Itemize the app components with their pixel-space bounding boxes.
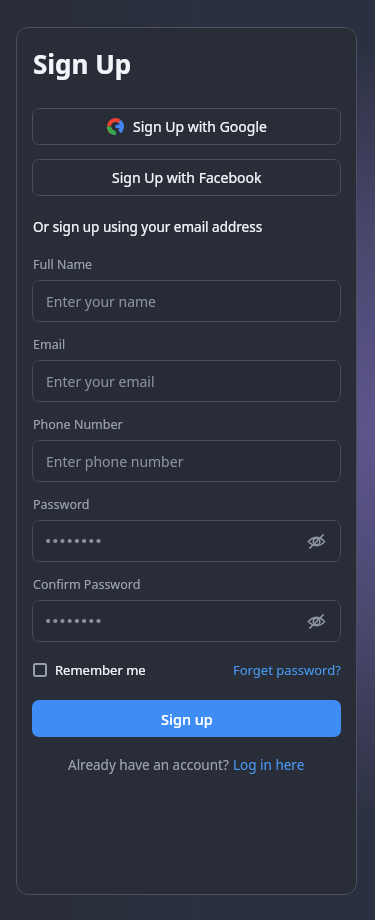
staticText: Or sign up using your email address (33, 218, 263, 236)
staticText: Sign Up with Facebook (112, 168, 262, 187)
staticText: Confirm Password (33, 576, 141, 593)
button[interactable]: Log in here (233, 756, 305, 774)
button[interactable]: Sign Up with Google (32, 108, 341, 145)
staticText: Log in here (233, 756, 305, 774)
staticText: Phone Number (33, 416, 123, 433)
button[interactable]: Remember me (32, 659, 147, 681)
staticText: Enter your email (46, 372, 155, 391)
staticText: Enter your name (46, 292, 156, 311)
button[interactable]: Show password (303, 528, 329, 554)
staticText: Forget password? (233, 661, 341, 679)
button[interactable]: Sign up (32, 700, 341, 737)
button[interactable]: Sign Up with Facebook (32, 159, 341, 196)
staticText: Enter phone number (46, 452, 184, 471)
button[interactable]: Enter your name (32, 280, 341, 322)
staticText: Full Name (33, 256, 93, 273)
button[interactable]: Forget password? (233, 659, 341, 681)
staticText: Remember me (55, 661, 146, 679)
button[interactable]: Enter phone number (32, 440, 341, 482)
staticText: Sign Up with Google (133, 117, 267, 136)
staticText: Already have an account? (68, 756, 233, 774)
button[interactable]: Enter your email (32, 360, 341, 402)
staticText: Password (33, 496, 90, 513)
staticText: Sign up (161, 709, 213, 729)
staticText: Email (33, 336, 66, 353)
button[interactable]: Show password (303, 608, 329, 634)
staticText: Sign Up (33, 46, 132, 81)
